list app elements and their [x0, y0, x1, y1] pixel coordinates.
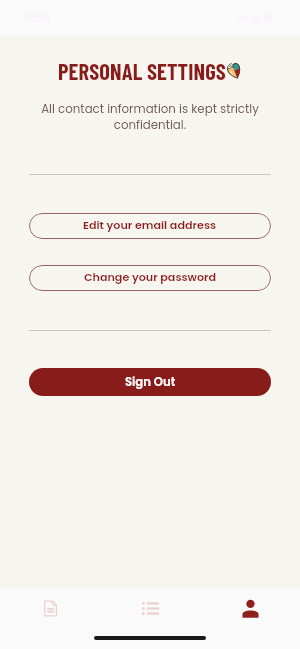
button[interactable]: Edit your email address — [29, 213, 271, 239]
button[interactable]: Profile — [200, 589, 300, 627]
staticText: Sign Out — [125, 374, 176, 390]
staticText: All contact information is kept strictly… — [30, 101, 270, 133]
staticText: Edit your email address — [83, 217, 217, 233]
staticText: PERSONAL SETTINGS — [58, 57, 226, 84]
staticText: Change your password — [84, 269, 217, 285]
button[interactable]: Documents — [0, 589, 100, 627]
button[interactable]: List — [100, 589, 200, 627]
button[interactable]: Sign Out — [29, 368, 271, 396]
button[interactable]: Change your password — [29, 265, 271, 291]
